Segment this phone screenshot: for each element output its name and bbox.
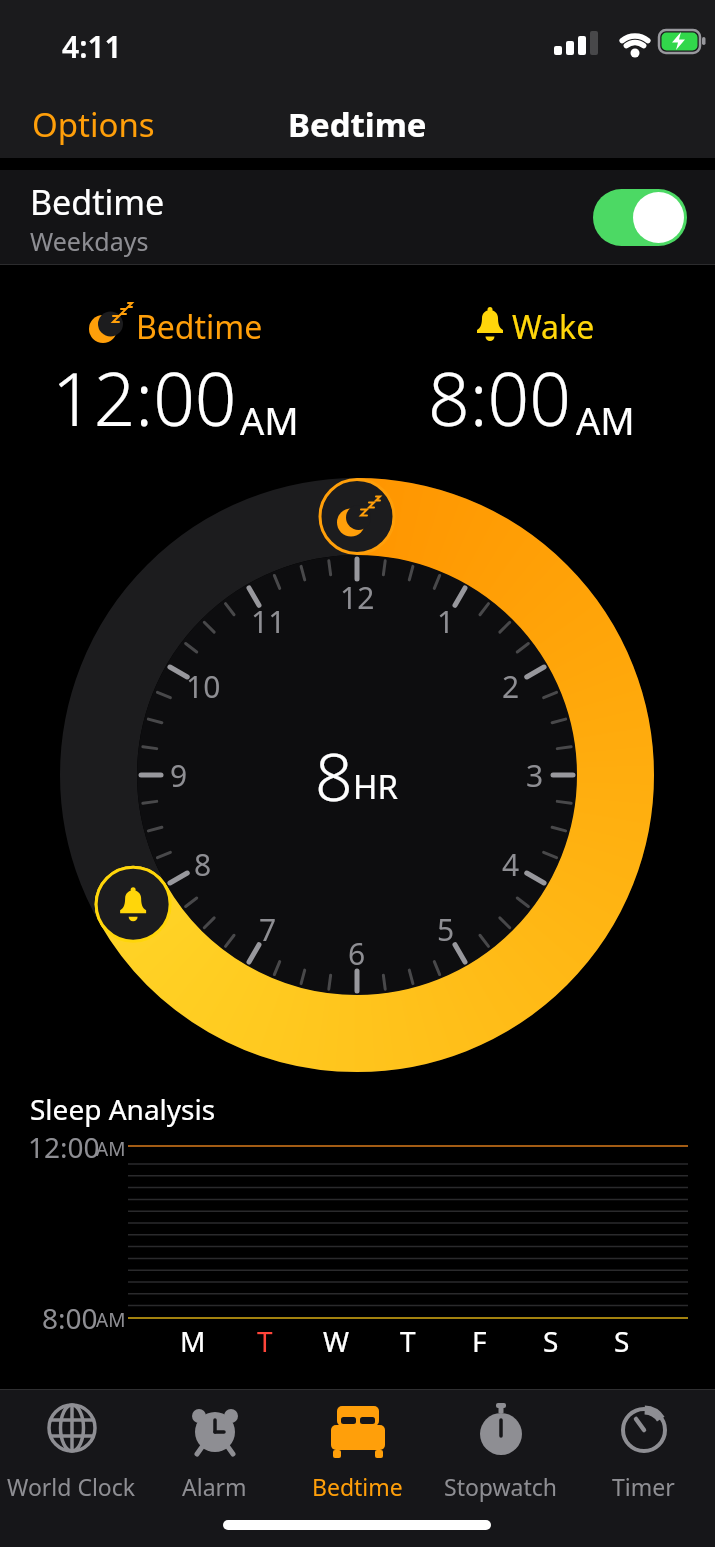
staticText: Alarm [182, 1471, 247, 1502]
staticText: T [400, 1322, 416, 1358]
button[interactable]: Timer [572, 1392, 715, 1512]
staticText: Stopwatch [444, 1471, 558, 1502]
button[interactable]: Options [12, 96, 135, 141]
staticText: 12:00 [28, 1128, 100, 1166]
staticText: 9 [170, 755, 188, 796]
staticText: Timer [612, 1471, 675, 1502]
button[interactable]: World Clock [0, 1392, 143, 1512]
staticText: AM [96, 1307, 126, 1333]
staticText: 1 [437, 601, 455, 642]
staticText: S [614, 1322, 630, 1358]
staticText: 8 [315, 730, 353, 820]
staticText: F [472, 1322, 487, 1358]
staticText: 12 [340, 577, 375, 618]
staticText: AM [576, 394, 635, 446]
staticText: Options [32, 102, 155, 147]
staticText: 10 [186, 666, 221, 707]
staticText: 12:00 [52, 348, 237, 447]
staticText: Bedtime [30, 179, 165, 225]
staticText: 4:11 [62, 26, 122, 67]
button[interactable]: Bedtime [0, 170, 715, 265]
staticText: 6 [348, 933, 366, 974]
staticText: 8:00 [42, 1299, 98, 1337]
staticText: 4 [502, 844, 520, 885]
staticText: HR [353, 764, 398, 809]
staticText: 8:00 [428, 348, 571, 447]
staticText: 5 [437, 909, 455, 950]
staticText: AM [240, 394, 299, 446]
staticText: Sleep Analysis [30, 1090, 216, 1128]
staticText: Bedtime [136, 305, 263, 349]
staticText: World Clock [7, 1471, 136, 1502]
staticText: T [257, 1322, 273, 1358]
staticText: 7 [259, 909, 277, 950]
staticText: Bedtime [288, 102, 427, 147]
staticText: M [180, 1322, 206, 1358]
staticText: Bedtime [312, 1471, 403, 1502]
staticText: Wake [512, 305, 595, 349]
button[interactable] [593, 189, 687, 246]
staticText: 11 [251, 601, 286, 642]
staticText: 8 [194, 844, 212, 885]
staticText: 2 [502, 666, 520, 707]
button[interactable]: Bedtime [286, 1392, 429, 1512]
button[interactable]: Stopwatch [429, 1392, 572, 1512]
staticText: Weekdays [30, 224, 149, 258]
button[interactable]: Alarm [143, 1392, 286, 1512]
staticText: S [543, 1322, 559, 1358]
staticText: 3 [526, 755, 544, 796]
staticText: AM [96, 1136, 126, 1162]
staticText: W [323, 1322, 350, 1358]
